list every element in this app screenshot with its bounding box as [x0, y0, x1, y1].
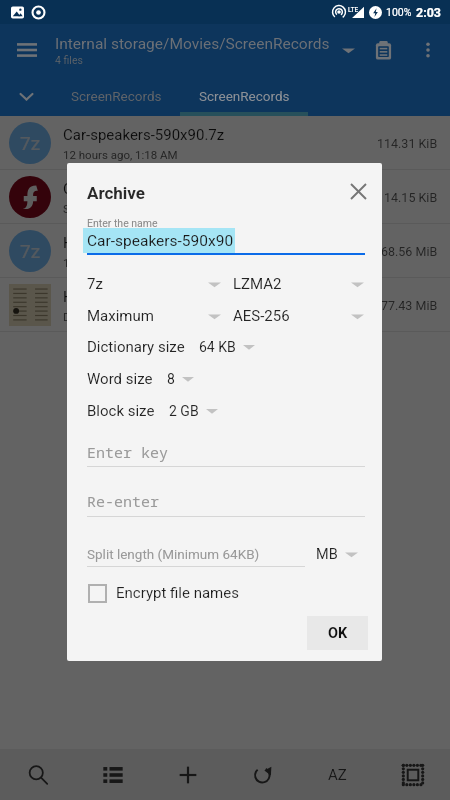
staticText: 7z: [87, 275, 103, 293]
button[interactable]: More options: [406, 24, 450, 76]
button[interactable]: Menu: [0, 24, 54, 76]
button[interactable]: Select all: [375, 749, 450, 800]
staticText: Home-videos-2020.7z: [63, 234, 209, 252]
button[interactable]: Encrypt file names: [89, 578, 289, 608]
staticText: 7z: [20, 132, 41, 154]
staticText: Car-speakers-590x90.7z: [63, 126, 225, 144]
button[interactable]: MB: [316, 541, 358, 567]
staticText: 114.15 KiB: [377, 190, 438, 205]
button[interactable]: List view: [75, 749, 150, 800]
staticText: LTE: [348, 6, 359, 14]
staticText: OK: [328, 625, 348, 642]
staticText: Car-speakers-590x90: [87, 232, 234, 250]
staticText: ScreenRecords: [199, 88, 290, 104]
button[interactable]: 7z: [0, 224, 450, 278]
staticText: Maximum: [87, 307, 154, 325]
button[interactable]: Maximum: [87, 302, 227, 330]
staticText: 4 files: [55, 54, 83, 66]
staticText: Word size: [87, 370, 153, 388]
staticText: Block size: [87, 402, 155, 420]
button[interactable]: Search: [0, 749, 75, 800]
staticText: Dec 1, 2020, 9:12 PM: [63, 310, 171, 323]
button[interactable]: Expand path: [334, 24, 362, 76]
staticText: Dictionary size: [87, 338, 185, 356]
staticText: 8: [167, 371, 175, 387]
button[interactable]: 7z: [87, 270, 227, 298]
button[interactable]: ScreenRecords: [52, 76, 180, 116]
button[interactable]: Dictionary size: [87, 333, 255, 361]
button[interactable]: Collapse: [0, 76, 52, 116]
staticText: Enter key: [87, 442, 169, 462]
button[interactable]: Close: [341, 174, 375, 208]
staticText: 2 GB: [169, 403, 199, 419]
staticText: Encrypt file names: [116, 584, 239, 602]
staticText: Enter the name: [87, 217, 158, 229]
staticText: Car-speakers-590x90.swf: [63, 180, 233, 198]
staticText: 2:03: [416, 5, 442, 20]
button[interactable]: Re-enter: [87, 491, 365, 511]
staticText: 7z: [20, 240, 41, 262]
button[interactable]: Car-speakers-590x90.swf: [0, 170, 450, 224]
staticText: 100%: [386, 6, 412, 18]
button[interactable]: ScreenRecords: [180, 76, 308, 116]
staticText: Re-enter: [87, 491, 160, 511]
staticText: Home-movies-backup.zip: [63, 288, 233, 306]
button[interactable]: LZMA2: [233, 270, 365, 298]
staticText: Internal storage/Movies/ScreenRecords: [55, 35, 330, 53]
staticText: 10 hours ago, 3:40 AM: [63, 256, 178, 269]
staticText: 68.56 MiB: [381, 244, 438, 259]
button[interactable]: Enter key: [87, 442, 365, 462]
staticText: ScreenRecords: [71, 88, 162, 104]
button[interactable]: AES-256: [233, 302, 365, 330]
button[interactable]: Sort A to Z: [300, 749, 375, 800]
button[interactable]: Clipboard: [362, 24, 404, 76]
staticText: 64 KB: [199, 339, 236, 355]
staticText: Split length (Minimum 64KB): [87, 546, 260, 562]
staticText: 77.43 MiB: [381, 298, 438, 313]
button[interactable]: Add: [150, 749, 225, 800]
button[interactable]: 7z: [0, 116, 450, 170]
staticText: AES-256: [233, 307, 290, 325]
staticText: 114.31 KiB: [377, 136, 438, 151]
staticText: Archive: [87, 183, 146, 203]
button[interactable]: Refresh: [225, 749, 300, 800]
button[interactable]: Split length (Minimum 64KB): [87, 546, 305, 562]
staticText: MB: [316, 546, 338, 563]
button[interactable]: Block size: [87, 397, 218, 425]
staticText: AZ: [328, 766, 347, 784]
staticText: Sep 23, 2020, 11:00 PM: [63, 202, 184, 215]
button[interactable]: Word size: [87, 365, 194, 393]
staticText: LZMA2: [233, 275, 282, 293]
button[interactable]: OK: [307, 616, 368, 650]
staticText: 12 hours ago, 1:18 AM: [63, 148, 178, 161]
button[interactable]: Home-movies-backup.zip: [0, 278, 450, 332]
